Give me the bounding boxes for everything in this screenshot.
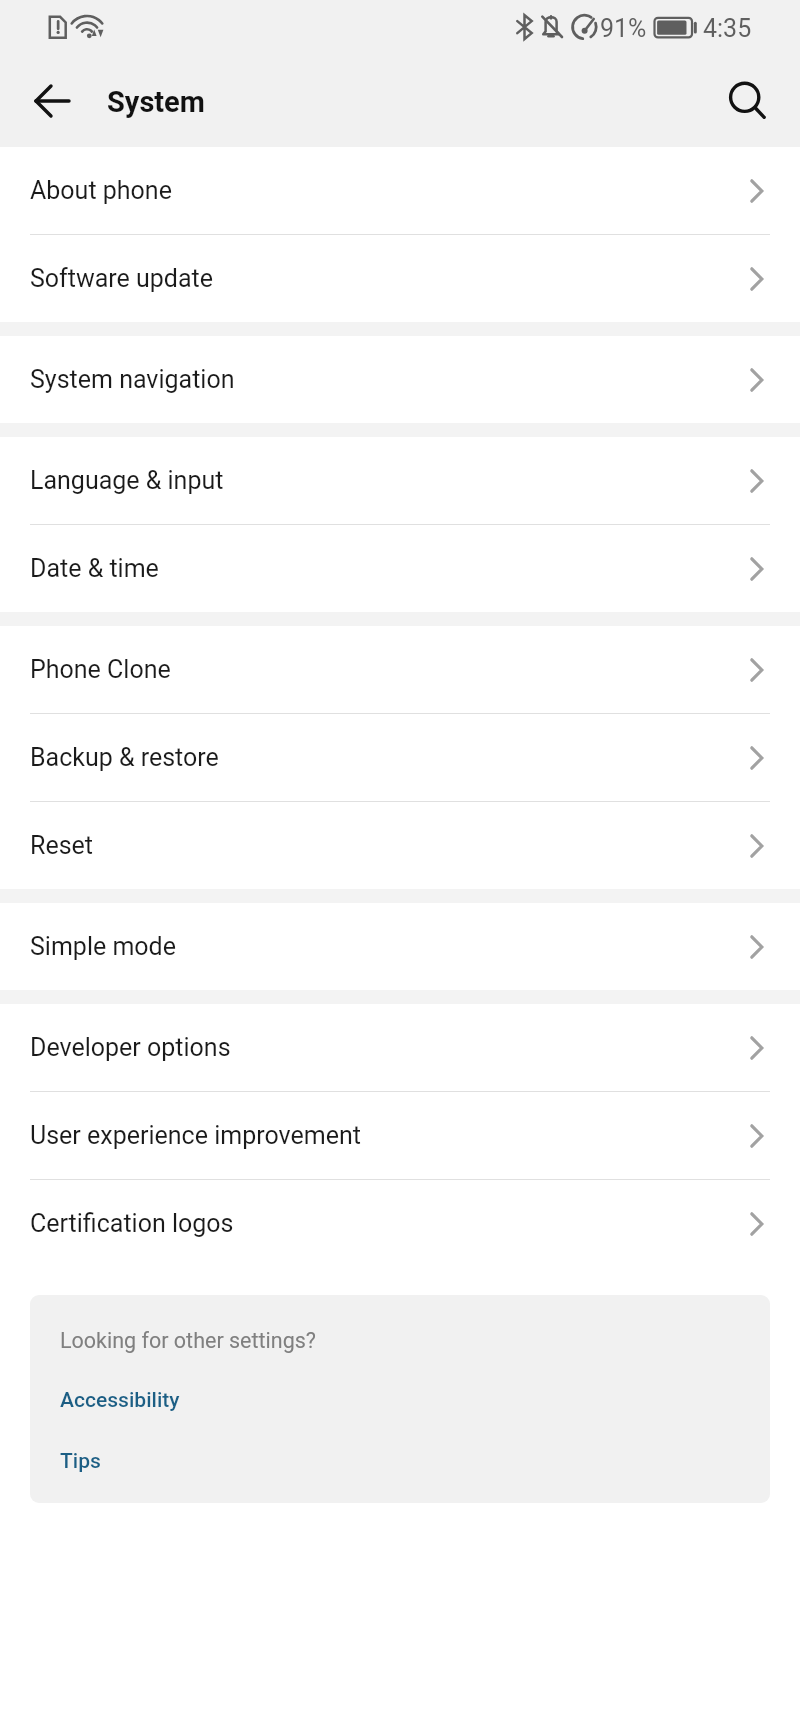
button[interactable]: Developer options xyxy=(0,1004,800,1091)
staticText: Reset xyxy=(30,831,94,860)
staticText: User experience improvement xyxy=(30,1121,361,1150)
staticText: System navigation xyxy=(30,365,235,394)
button[interactable]: Back xyxy=(16,66,88,138)
staticText: 4:35 xyxy=(703,14,752,43)
button[interactable]: Reset xyxy=(0,802,800,889)
staticText: Developer options xyxy=(30,1033,231,1062)
button[interactable]: Certification logos xyxy=(0,1180,800,1267)
staticText: 91% xyxy=(600,14,647,43)
button[interactable]: Search xyxy=(714,66,786,138)
button[interactable]: Language & input xyxy=(0,437,800,524)
staticText: Software update xyxy=(30,264,214,293)
staticText: Simple mode xyxy=(30,932,176,961)
button[interactable]: User experience improvement xyxy=(0,1092,800,1179)
staticText: Date & time xyxy=(30,554,159,583)
staticText: System xyxy=(107,85,205,119)
button[interactable]: Phone Clone xyxy=(0,626,800,713)
button[interactable]: Date & time xyxy=(0,525,800,612)
staticText: Looking for other settings? xyxy=(60,1328,317,1353)
staticText: Language & input xyxy=(30,466,224,495)
staticText: Phone Clone xyxy=(30,655,171,684)
button[interactable]: About phone xyxy=(0,147,800,234)
staticText: Accessibility xyxy=(60,1388,180,1413)
staticText: About phone xyxy=(30,176,172,205)
staticText: Tips xyxy=(60,1449,101,1474)
staticText: Backup & restore xyxy=(30,743,219,772)
button[interactable]: Backup & restore xyxy=(0,714,800,801)
button[interactable]: System navigation xyxy=(0,336,800,423)
staticText: Certification logos xyxy=(30,1209,234,1238)
button[interactable]: Tips xyxy=(30,1431,770,1492)
button[interactable]: Software update xyxy=(0,235,800,322)
button[interactable]: Accessibility xyxy=(30,1370,770,1431)
button[interactable]: Simple mode xyxy=(0,903,800,990)
